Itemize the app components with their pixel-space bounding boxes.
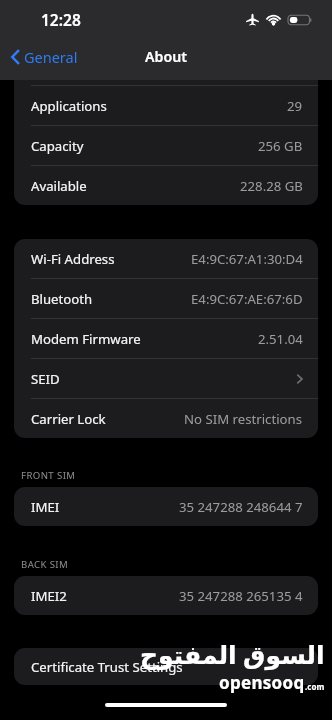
staticText: 12:28 xyxy=(41,9,81,30)
staticText: SEID xyxy=(31,370,60,388)
staticText: Capacity xyxy=(31,137,84,155)
staticText: Bluetooth xyxy=(31,290,93,308)
button[interactable]: Capacity xyxy=(14,126,318,166)
staticText: opensooq xyxy=(219,671,305,694)
button[interactable]: Certificate Trust Settings xyxy=(14,648,318,685)
staticText: Certificate Trust Settings xyxy=(31,658,183,676)
staticText: .com xyxy=(305,681,325,692)
button[interactable]: Carrier Lock xyxy=(14,399,318,438)
staticText: Wi-Fi Address xyxy=(31,250,115,268)
staticText: No SIM restrictions xyxy=(184,410,303,428)
button[interactable]: SEID xyxy=(14,359,318,399)
staticText: 2.51.04 xyxy=(258,330,303,348)
staticText: 35 247288 265135 4 xyxy=(179,587,303,605)
staticText: About xyxy=(145,47,187,66)
staticText: Applications xyxy=(31,97,107,115)
staticText: 35 247288 248644 7 xyxy=(179,498,303,516)
staticText: Modem Firmware xyxy=(31,330,141,348)
button[interactable]: Wi-Fi Address xyxy=(14,239,318,279)
staticText: IMEI2 xyxy=(31,587,67,605)
staticText: BACK SIM xyxy=(21,558,69,571)
staticText: IMEI xyxy=(31,498,60,516)
staticText: General xyxy=(24,47,78,67)
staticText: E4:9C:67:A1:30:D4 xyxy=(191,250,303,268)
staticText: E4:9C:67:AE:67:6D xyxy=(191,290,303,308)
button[interactable]: Modem Firmware xyxy=(14,319,318,359)
staticText: Carrier Lock xyxy=(31,410,106,428)
staticText: Available xyxy=(31,177,87,195)
button[interactable]: General xyxy=(6,42,83,72)
button[interactable]: IMEI xyxy=(14,487,318,526)
staticText: السوق المفتوح xyxy=(140,637,325,671)
staticText: 256 GB xyxy=(258,137,303,155)
button[interactable]: IMEI2 xyxy=(14,576,318,615)
button[interactable]: Applications xyxy=(14,86,318,126)
staticText: 29 xyxy=(287,97,303,115)
button[interactable]: Available xyxy=(14,166,318,205)
staticText: 228.28 GB xyxy=(240,177,303,195)
button[interactable]: Bluetooth xyxy=(14,279,318,319)
staticText: FRONT SIM xyxy=(21,469,76,482)
